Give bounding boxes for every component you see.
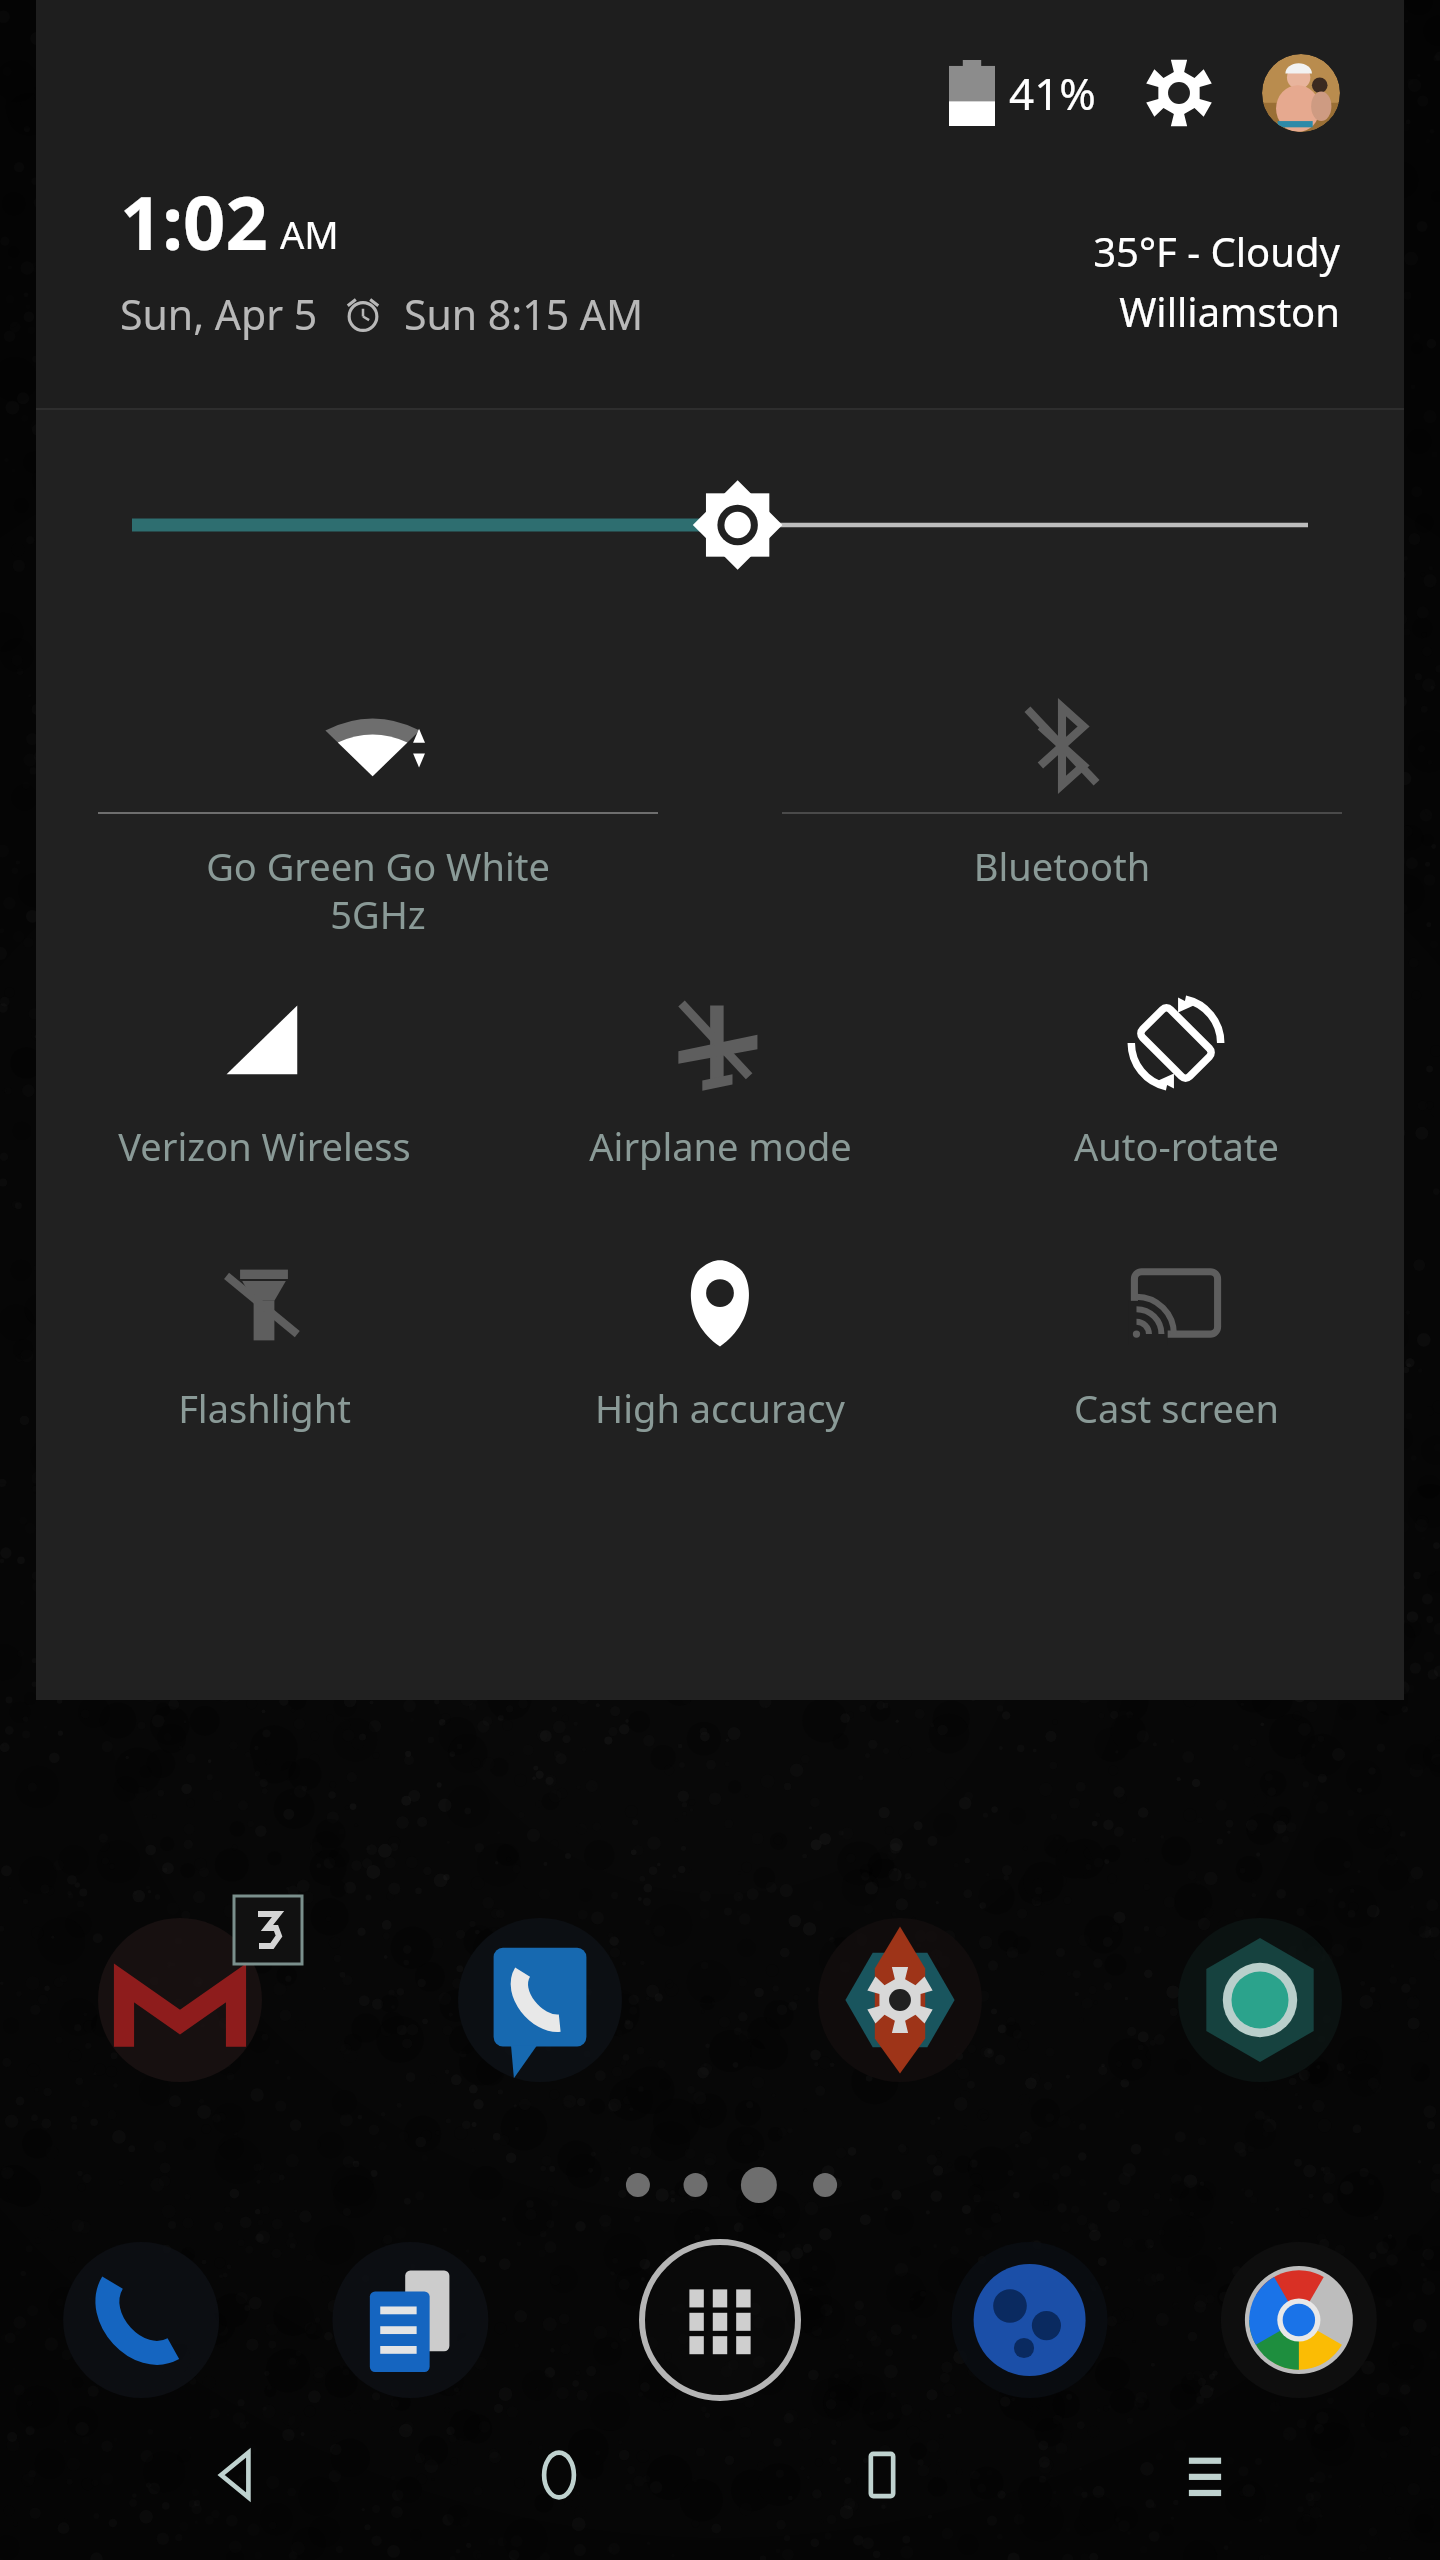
button[interactable]: Airplane mode [492, 966, 948, 1184]
button[interactable]: Flashlight [36, 1228, 492, 1446]
button[interactable]: Brightness [36, 410, 1404, 640]
staticText: Auto-rotate [1074, 1120, 1279, 1172]
button[interactable]: Cast screen [948, 1228, 1404, 1446]
staticText: Williamston [1119, 284, 1340, 338]
staticText: Cast screen [1074, 1382, 1279, 1434]
staticText: Airplane mode [589, 1120, 852, 1172]
button[interactable]: Go Green Go White 5GHz [36, 680, 720, 940]
staticText: Sun 8:15 AM [404, 286, 644, 342]
staticText: Sun, Apr 5 [120, 286, 318, 342]
staticText: 35°F - Cloudy [1093, 224, 1340, 278]
button[interactable]: Recents [812, 2405, 952, 2545]
button[interactable]: User profile [1262, 54, 1340, 132]
staticText: Bluetooth [782, 840, 1342, 892]
button[interactable]: Auto-rotate [948, 966, 1404, 1184]
other: Battery 41 percent [949, 60, 995, 126]
staticText: High accuracy [595, 1382, 845, 1434]
button[interactable]: 35°F - Cloudy [1093, 224, 1340, 338]
staticText: 1:02 [120, 171, 268, 272]
staticText: Go Green Go White 5GHz [98, 840, 658, 940]
staticText: AM [280, 208, 339, 260]
button[interactable]: Back [166, 2405, 306, 2545]
button[interactable]: Menu [1135, 2405, 1275, 2545]
staticText: Verizon Wireless [118, 1120, 411, 1172]
button[interactable]: Verizon Wireless [36, 966, 492, 1184]
button[interactable]: Settings [1142, 56, 1216, 130]
button[interactable]: Bluetooth [720, 680, 1404, 892]
staticText: Flashlight [178, 1382, 351, 1434]
button[interactable]: Home [489, 2405, 629, 2545]
button[interactable]: High accuracy [492, 1228, 948, 1446]
staticText: 41% [1009, 63, 1096, 123]
